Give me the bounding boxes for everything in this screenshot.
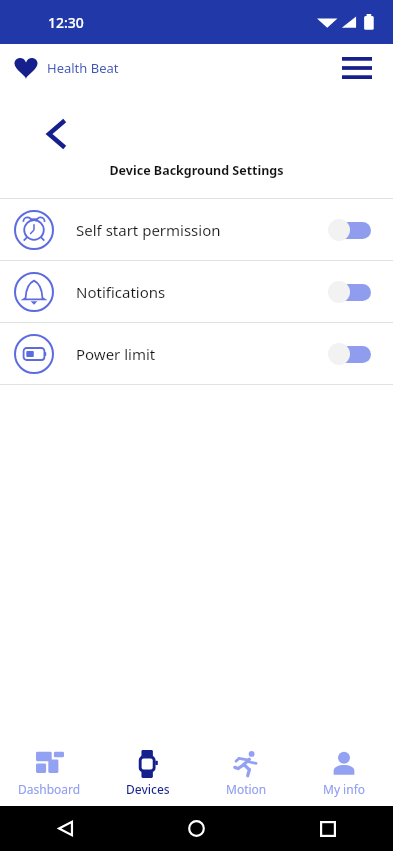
button[interactable]: Power limit xyxy=(0,323,393,384)
staticText: Devices xyxy=(126,781,170,797)
staticText: Dashboard xyxy=(18,781,81,797)
button[interactable]: Recent apps xyxy=(262,806,393,851)
button[interactable]: Menu xyxy=(337,48,377,88)
staticText: My info xyxy=(323,781,366,797)
staticText: Notifications xyxy=(76,282,166,302)
button[interactable]: Toggle xyxy=(327,277,379,307)
staticText: Self start permission xyxy=(76,220,221,240)
staticText: 12:30 xyxy=(48,13,84,32)
button[interactable]: My info xyxy=(295,740,393,806)
staticText: Power limit xyxy=(76,344,156,364)
button[interactable]: Toggle xyxy=(327,339,379,369)
button[interactable]: Notifications xyxy=(0,261,393,322)
button[interactable]: Home xyxy=(131,806,262,851)
button[interactable]: Self start permission xyxy=(0,199,393,260)
button[interactable]: Dashboard xyxy=(0,740,99,806)
button[interactable]: Back xyxy=(36,114,76,154)
button[interactable]: Motion xyxy=(197,740,295,806)
staticText: Device Background Settings xyxy=(0,162,393,179)
staticText: Health Beat xyxy=(47,59,119,77)
button[interactable]: Toggle xyxy=(327,215,379,245)
button[interactable]: Devices xyxy=(99,740,197,806)
staticText: Motion xyxy=(226,781,267,797)
button[interactable]: Back xyxy=(0,806,131,851)
